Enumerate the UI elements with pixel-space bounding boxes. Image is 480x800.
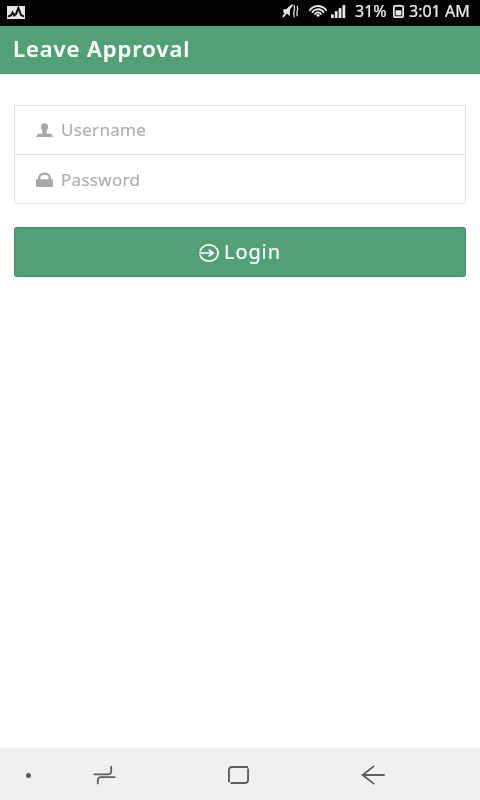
staticText: Login [224,238,281,265]
button[interactable]: Login [14,227,466,277]
staticText: Username [61,118,147,141]
button[interactable]: Password [14,155,466,204]
staticText: 3:01 AM [409,0,470,22]
button[interactable]: Recent apps [84,755,124,795]
staticText: Password [61,168,141,191]
button[interactable]: Username [14,105,466,154]
staticText: Leave Approval [13,33,191,63]
other: Menu [26,773,31,778]
button[interactable]: Home [218,755,258,795]
button[interactable]: Back [353,755,393,795]
staticText: 31% [355,0,387,22]
